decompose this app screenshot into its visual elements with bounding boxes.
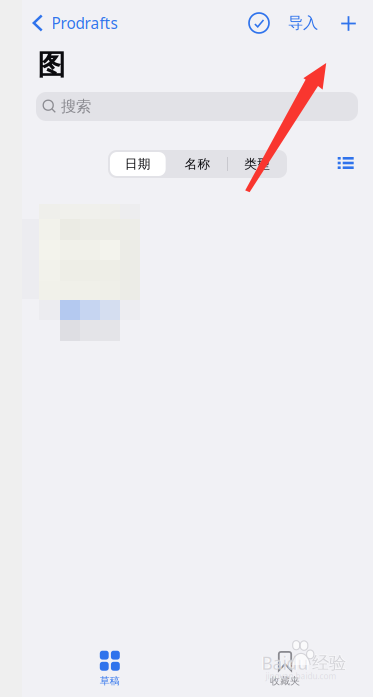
staticText: 图 — [37, 47, 65, 83]
button[interactable]: Select items — [240, 3, 278, 43]
staticText: 名称 — [184, 156, 210, 172]
staticText: 经验 — [312, 652, 346, 674]
button[interactable]: New drawing — [329, 3, 367, 43]
staticText: Baidu — [260, 651, 309, 675]
staticText: 搜索 — [61, 97, 91, 116]
button[interactable]: 日期 — [108, 150, 168, 178]
button[interactable]: 草稿 — [65, 646, 155, 692]
button[interactable]: 名称 — [168, 150, 227, 178]
staticText: 经验 — [312, 652, 346, 674]
staticText: 收藏夹 — [270, 674, 300, 687]
staticText: jingyan.baidu.com — [265, 670, 336, 682]
staticText: 日期 — [125, 156, 151, 172]
button[interactable]: 导入 — [280, 3, 326, 43]
button[interactable]: Switch to list view — [329, 148, 363, 178]
staticText: 草稿 — [100, 675, 120, 687]
staticText: 类型 — [244, 156, 270, 172]
staticText: 导入 — [288, 13, 318, 33]
staticText: Baidu — [261, 651, 308, 675]
button[interactable]: Prodrafts — [24, 3, 125, 43]
staticText: Prodrafts — [51, 13, 117, 33]
button[interactable]: 类型 — [227, 150, 287, 178]
button[interactable]: 收藏夹 — [240, 646, 330, 692]
button[interactable]: 搜索 — [36, 92, 358, 121]
